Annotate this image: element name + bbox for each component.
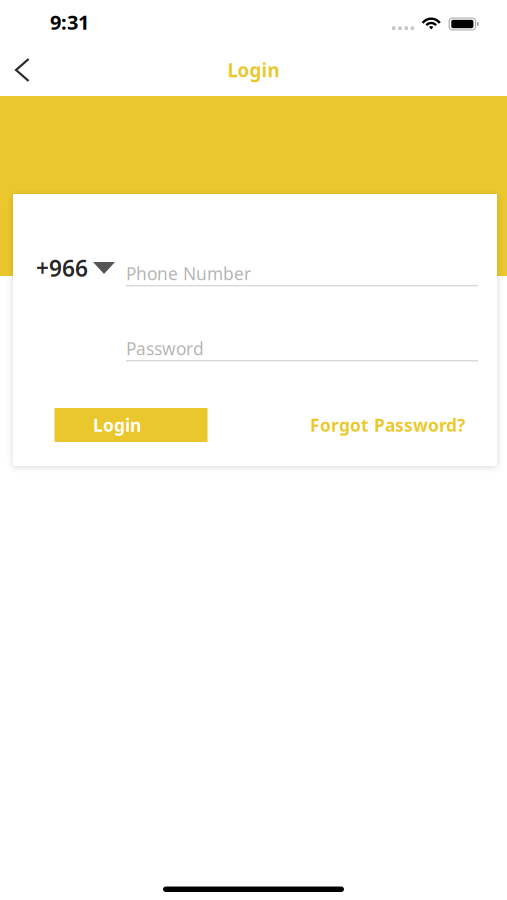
button[interactable]: Back <box>0 47 46 93</box>
staticText: Password <box>126 337 204 360</box>
button[interactable]: Phone Number <box>126 265 478 286</box>
staticText: Forgot Password? <box>310 413 465 436</box>
button[interactable]: +966 <box>36 255 115 281</box>
staticText: 9:31 <box>50 9 89 35</box>
button[interactable]: Forgot Password? <box>310 408 465 442</box>
staticText: Login <box>227 58 279 82</box>
staticText: Login <box>93 413 141 436</box>
staticText: +966 <box>36 253 88 283</box>
button[interactable]: Login <box>54 408 207 442</box>
button[interactable]: Password <box>126 340 478 361</box>
staticText: Phone Number <box>126 262 251 285</box>
